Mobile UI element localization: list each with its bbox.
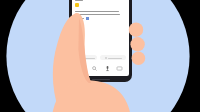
button[interactable]: Search	[89, 64, 99, 72]
button[interactable]: Camera	[114, 64, 124, 72]
button[interactable]	[75, 55, 97, 60]
button[interactable]: Microphone	[102, 64, 112, 72]
button[interactable]	[100, 55, 126, 60]
button[interactable]: Keyboard	[77, 64, 87, 72]
